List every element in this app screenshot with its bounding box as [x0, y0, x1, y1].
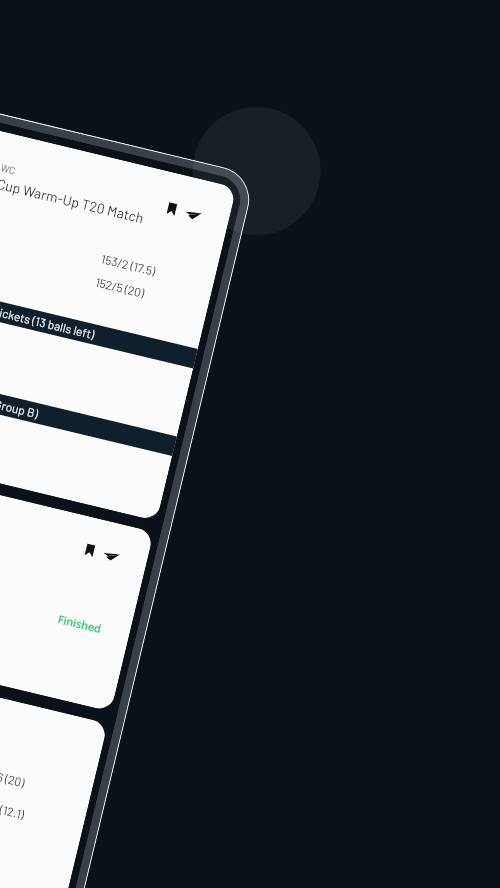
button[interactable]: Share	[184, 209, 202, 221]
staticText: 153/2 (17.5)	[100, 251, 158, 278]
staticText: 109/7 (12.1)	[0, 795, 26, 821]
button[interactable]: ICC Men's T20 WC	[0, 112, 237, 521]
button[interactable]: T20 WC	[0, 648, 108, 888]
staticText: ICC Men's T20 WC	[0, 147, 17, 176]
staticText: ICC World Cup Warm-Up T20 Match	[0, 161, 146, 227]
staticText: 113/6 (20)	[0, 765, 26, 789]
button[interactable]: Bookmark	[167, 202, 177, 216]
staticText: ICC World Cup, 2024 (Group B)	[0, 371, 40, 420]
staticText: Ireland won by 8 wickets (13 balls left)	[0, 283, 96, 341]
staticText: 152/5 (20)	[94, 275, 146, 300]
button[interactable]: Share	[102, 551, 120, 562]
button[interactable]: Bookmark	[85, 544, 95, 557]
staticText: Finished	[56, 611, 104, 636]
button[interactable]: T20 WC	[0, 456, 154, 712]
